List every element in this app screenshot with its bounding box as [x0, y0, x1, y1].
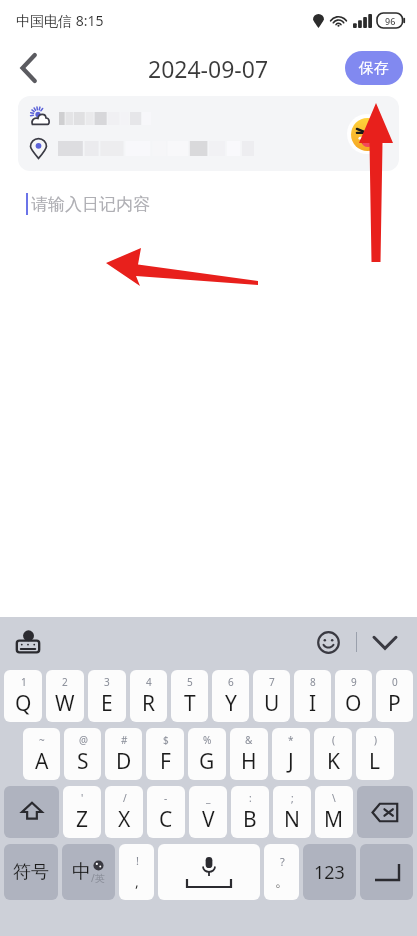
staticText: 8 — [310, 675, 316, 689]
button[interactable]: Voice input — [158, 844, 260, 900]
staticText: U — [264, 689, 280, 718]
staticText: Z — [76, 805, 89, 834]
button[interactable]: 请输入日记内容 — [26, 189, 417, 219]
button[interactable]: 7 — [253, 670, 290, 722]
staticText: ( — [332, 733, 335, 747]
staticText: & — [245, 733, 253, 747]
staticText: ! — [136, 853, 139, 868]
staticText: G — [199, 747, 215, 776]
staticText: 符号 — [13, 861, 49, 884]
button[interactable]: Switch language — [10, 624, 46, 660]
button[interactable]: Mood — [347, 114, 387, 154]
staticText: M — [324, 805, 344, 834]
button[interactable]: 9 — [335, 670, 372, 722]
staticText: R — [142, 689, 156, 718]
staticText: 96 — [385, 15, 396, 27]
button[interactable]: / — [105, 786, 143, 838]
staticText: 。 — [275, 873, 289, 891]
staticText: J — [288, 747, 294, 776]
staticText: ' — [81, 791, 84, 805]
button[interactable]: * — [272, 728, 310, 780]
button[interactable]: - — [147, 786, 185, 838]
button[interactable]: Back — [6, 46, 50, 90]
staticText: % — [203, 733, 212, 747]
button[interactable]: 保存 — [345, 51, 403, 85]
button[interactable]: 0 — [376, 670, 413, 722]
staticText: C — [159, 805, 173, 834]
staticText: 6 — [228, 675, 234, 689]
staticText: @ — [79, 733, 88, 747]
button[interactable]: Shift — [4, 786, 59, 838]
staticText: * — [288, 733, 294, 747]
staticText: - — [164, 791, 168, 805]
staticText: _ — [206, 791, 211, 805]
staticText: 5 — [187, 675, 193, 689]
staticText: T — [184, 689, 196, 718]
staticText: 9 — [351, 675, 357, 689]
staticText: D — [116, 747, 132, 776]
button[interactable]: & — [230, 728, 268, 780]
staticText: E — [101, 689, 113, 718]
button[interactable]: 1 — [4, 670, 42, 722]
button[interactable]: 123 — [303, 844, 356, 900]
staticText: # — [121, 733, 128, 747]
button[interactable]: ~ — [23, 728, 60, 780]
staticText: P — [388, 689, 401, 718]
button[interactable]: Backspace — [357, 786, 413, 838]
button[interactable]: 符号 — [4, 844, 58, 900]
button[interactable]: : — [231, 786, 269, 838]
button[interactable]: 2 — [46, 670, 84, 722]
button[interactable]: ) — [356, 728, 394, 780]
staticText: 请输入日记内容 — [31, 194, 150, 215]
staticText: ; — [291, 791, 294, 805]
staticText: 保存 — [359, 59, 389, 78]
staticText: : — [249, 791, 252, 805]
button[interactable]: ! — [119, 844, 154, 900]
staticText: \ — [332, 791, 336, 805]
staticText: /英 — [91, 871, 105, 885]
staticText: $ — [163, 733, 169, 747]
staticText: ? — [280, 854, 285, 869]
button[interactable]: Enter — [360, 844, 413, 900]
staticText: S — [77, 747, 89, 776]
button[interactable]: ; — [273, 786, 311, 838]
button[interactable]: ? — [264, 844, 299, 900]
button[interactable]: 中 — [62, 844, 115, 900]
staticText: 1 — [21, 675, 27, 689]
button[interactable]: 8 — [294, 670, 331, 722]
staticText: , — [135, 872, 139, 891]
staticText: Y — [225, 689, 237, 718]
staticText: 123 — [314, 860, 345, 885]
button[interactable]: ( — [314, 728, 352, 780]
staticText: O — [345, 689, 362, 718]
button[interactable]: _ — [189, 786, 227, 838]
staticText: I — [309, 689, 317, 718]
button[interactable]: 6 — [212, 670, 249, 722]
staticText: 7 — [269, 675, 275, 689]
button[interactable]: # — [105, 728, 142, 780]
staticText: A — [35, 747, 49, 776]
staticText: 3 — [104, 675, 110, 689]
staticText: 0 — [392, 675, 398, 689]
staticText: H — [241, 747, 257, 776]
button[interactable]: Hide keyboard — [367, 624, 403, 660]
staticText: ~ — [39, 733, 45, 747]
button[interactable]: % — [188, 728, 226, 780]
staticText: N — [284, 805, 300, 834]
button[interactable]: 4 — [130, 670, 167, 722]
staticText: W — [55, 689, 75, 718]
button[interactable]: Mood — [18, 96, 399, 171]
button[interactable]: @ — [64, 728, 101, 780]
button[interactable]: Emoji — [310, 624, 346, 660]
button[interactable]: 3 — [88, 670, 126, 722]
staticText: L — [369, 747, 381, 776]
staticText: Q — [15, 689, 32, 718]
button[interactable]: \ — [315, 786, 353, 838]
staticText: X — [118, 805, 131, 834]
staticText: 2 — [62, 675, 68, 689]
staticText: 2024-09-07 — [148, 53, 269, 84]
staticText: ) — [374, 733, 377, 747]
button[interactable]: 5 — [171, 670, 208, 722]
button[interactable]: $ — [146, 728, 184, 780]
button[interactable]: ' — [63, 786, 101, 838]
